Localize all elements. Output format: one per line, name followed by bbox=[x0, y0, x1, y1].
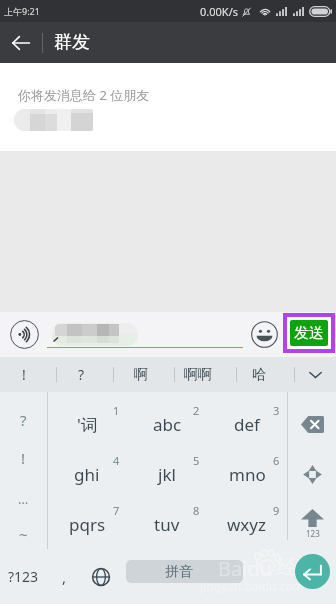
button[interactable]: Switch input language bbox=[81, 549, 121, 604]
staticText: 7 bbox=[113, 503, 120, 518]
staticText: jingyan.baidu.com bbox=[200, 578, 304, 594]
staticText: '词 bbox=[77, 413, 98, 436]
button[interactable]: Back bbox=[0, 22, 42, 63]
button[interactable]: wxyz bbox=[207, 499, 287, 549]
button[interactable]: 拼音 bbox=[126, 560, 243, 583]
staticText: pqrs bbox=[69, 513, 106, 536]
staticText: ! bbox=[22, 365, 26, 384]
button[interactable]: Enter bbox=[295, 554, 330, 589]
staticText: 3 bbox=[273, 403, 280, 418]
button[interactable]: ! bbox=[0, 357, 47, 392]
staticText: ghi bbox=[74, 463, 100, 486]
staticText: ! bbox=[21, 448, 26, 468]
staticText: 9 bbox=[273, 503, 280, 518]
button[interactable]: ! bbox=[0, 441, 47, 474]
staticText: … bbox=[18, 490, 29, 508]
staticText: 1 bbox=[113, 403, 120, 418]
staticText: 5 bbox=[193, 453, 200, 468]
staticText: 哈 bbox=[252, 366, 266, 384]
staticText: wxyz bbox=[227, 513, 267, 536]
staticText: ~ bbox=[19, 524, 28, 544]
staticText: abc bbox=[153, 413, 182, 436]
button[interactable]: tuv bbox=[127, 499, 207, 549]
button[interactable]: ~ bbox=[0, 517, 47, 550]
staticText: jkl bbox=[158, 463, 176, 486]
button[interactable]: Move cursor bbox=[288, 449, 336, 499]
button[interactable]: , bbox=[47, 549, 81, 604]
staticText: 啊啊 bbox=[184, 366, 212, 384]
staticText: 拼音 bbox=[165, 563, 193, 581]
button[interactable]: Emoji bbox=[251, 321, 278, 348]
staticText: ? bbox=[20, 410, 27, 430]
staticText: def bbox=[234, 413, 260, 436]
staticText: ?123 bbox=[8, 567, 39, 586]
button[interactable]: ? bbox=[57, 357, 106, 392]
button[interactable]: def bbox=[207, 399, 287, 449]
button[interactable]: jkl bbox=[127, 449, 207, 499]
staticText: 发送 bbox=[294, 324, 324, 343]
button[interactable]: … bbox=[0, 482, 47, 515]
staticText: mno bbox=[229, 463, 266, 486]
button[interactable]: 啊 bbox=[114, 357, 167, 392]
button[interactable]: ghi bbox=[47, 449, 127, 499]
staticText: 0.00K/s bbox=[200, 4, 238, 19]
staticText: 上午9:21 bbox=[4, 5, 40, 17]
button[interactable]: pqrs bbox=[47, 499, 127, 549]
staticText: 经验 bbox=[277, 555, 317, 580]
button[interactable]: Shift to numbers bbox=[288, 499, 336, 549]
staticText: 8 bbox=[193, 503, 200, 518]
button[interactable]: Backspace bbox=[288, 399, 336, 449]
button[interactable]: '词 bbox=[47, 399, 127, 449]
staticText: 6 bbox=[273, 453, 280, 468]
staticText: Baidu bbox=[218, 555, 273, 582]
staticText: 你将发消息给 2 位朋友 bbox=[18, 86, 150, 104]
staticText: 啊 bbox=[134, 366, 148, 384]
button[interactable]: 啊啊 bbox=[175, 357, 221, 392]
button[interactable]: mno bbox=[207, 449, 287, 499]
staticText: ? bbox=[78, 365, 85, 384]
button[interactable]: More suggestions bbox=[295, 357, 336, 392]
button[interactable]: 发送 bbox=[290, 320, 328, 346]
staticText: 123 bbox=[306, 528, 320, 539]
staticText: 4 bbox=[113, 453, 120, 468]
button[interactable]: abc bbox=[127, 399, 207, 449]
button[interactable]: ?123 bbox=[0, 549, 47, 604]
staticText: 2 bbox=[193, 403, 200, 418]
button[interactable] bbox=[14, 109, 93, 131]
button[interactable]: Voice input bbox=[10, 320, 39, 349]
button[interactable]: 哈 bbox=[237, 357, 281, 392]
staticText: , bbox=[62, 567, 67, 587]
staticText: tuv bbox=[154, 513, 180, 536]
button[interactable]: ? bbox=[0, 403, 47, 436]
staticText: 群发 bbox=[54, 31, 90, 54]
